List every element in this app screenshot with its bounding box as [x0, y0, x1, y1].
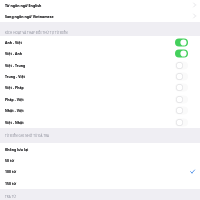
button[interactable]: Disabled — [175, 83, 188, 92]
button[interactable]: Không lưu lại — [0, 143, 200, 155]
staticText: Anh - Việt — [5, 40, 22, 45]
button[interactable]: Enabled — [175, 49, 188, 58]
staticText: Pháp - Việt — [5, 97, 24, 102]
button[interactable]: Việt - Pháp — [0, 82, 200, 93]
staticText: Trung - Việt — [5, 74, 26, 79]
staticText: Việt - Nhật — [5, 120, 24, 125]
button[interactable]: Anh - Việt — [0, 36, 200, 48]
button[interactable]: Enabled — [175, 38, 188, 47]
button[interactable]: 100 từ — [0, 166, 200, 177]
staticText: Không lưu lại — [5, 147, 29, 152]
button[interactable]: Disabled — [175, 95, 188, 104]
button[interactable]: Disabled — [175, 118, 188, 127]
button[interactable]: 150 từ — [0, 177, 200, 189]
button[interactable]: Disabled — [175, 61, 188, 70]
staticText: Anh - Việt — [5, 40, 22, 45]
staticText: 150 từ — [5, 181, 17, 186]
button[interactable]: 50 từ — [0, 155, 200, 166]
button[interactable]: Disabled — [175, 72, 188, 81]
staticText: Pháp - Việt — [5, 97, 24, 102]
staticText: Việt - Pháp — [5, 85, 24, 90]
staticText: 100 từ — [5, 169, 17, 174]
staticText: Trung - Việt — [5, 74, 26, 79]
staticText: TRA TỪ — [5, 195, 16, 199]
staticText: KÍCH HOẠT VÀ THAY ĐỔI THỨ TỰ TỪ ĐIỂN — [5, 31, 68, 35]
staticText: Sang ngôn ngữ Vietnamese — [5, 14, 54, 19]
staticText: Việt - Trung — [5, 63, 26, 68]
staticText: 50 từ — [5, 158, 15, 163]
staticText: Không lưu lại — [5, 147, 29, 152]
staticText: 150 từ — [5, 181, 17, 186]
staticText: Việt - Pháp — [5, 85, 24, 90]
staticText: Việt - Nhật — [5, 120, 24, 125]
staticText: 100 từ — [5, 169, 17, 174]
button[interactable]: Việt - Anh — [0, 48, 200, 59]
staticText: Nhật - Việt — [5, 108, 24, 113]
staticText: Từ ngôn ngữ English — [5, 3, 42, 8]
button[interactable]: Việt - Nhật — [0, 116, 200, 128]
staticText: Việt - Anh — [5, 51, 22, 56]
staticText: Từ ngôn ngữ English — [5, 3, 42, 8]
button[interactable]: Trung - Việt — [0, 71, 200, 82]
staticText: Nhật - Việt — [5, 108, 24, 113]
staticText: TỪ ĐIỂN GHI NHỚ TỪ ĐÃ TRA — [5, 134, 50, 138]
button[interactable]: Từ ngôn ngữ English — [0, 0, 200, 10]
staticText: Sang ngôn ngữ Vietnamese — [5, 14, 54, 19]
button[interactable]: Nhật - Việt — [0, 105, 200, 116]
staticText: Việt - Anh — [5, 51, 22, 56]
button[interactable]: Sang ngôn ngữ Vietnamese — [0, 10, 200, 22]
staticText: 50 từ — [5, 158, 15, 163]
button[interactable]: Pháp - Việt — [0, 93, 200, 105]
staticText: Việt - Trung — [5, 63, 26, 68]
button[interactable]: Việt - Trung — [0, 59, 200, 71]
button[interactable]: Disabled — [175, 106, 188, 115]
